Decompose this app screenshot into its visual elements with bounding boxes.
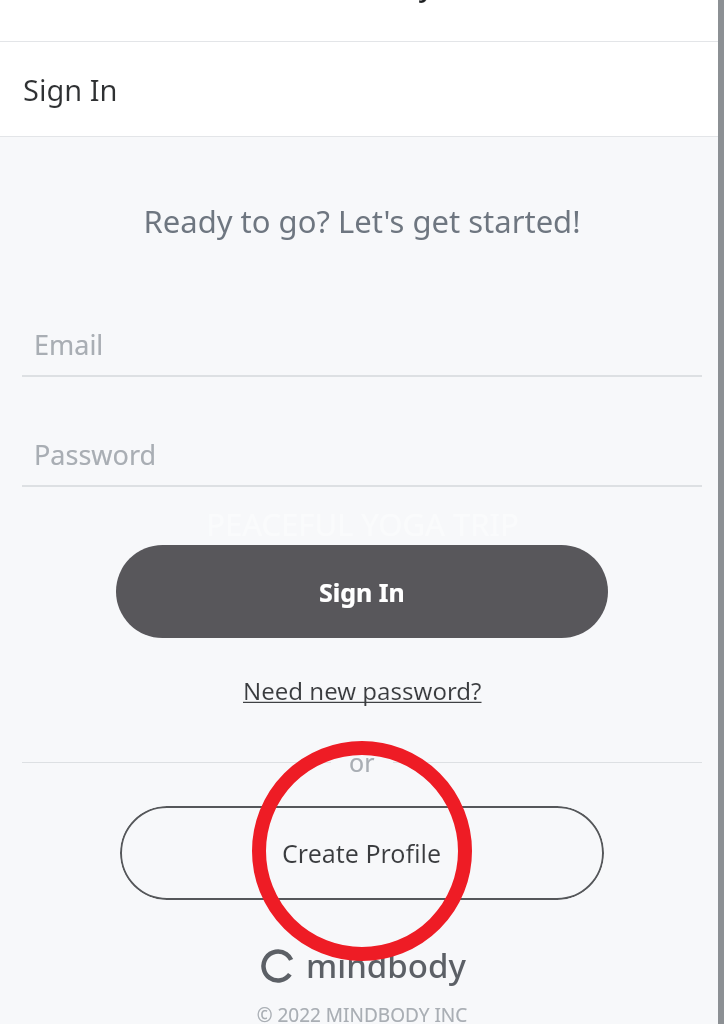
- staticText: Password: [34, 436, 157, 473]
- staticText: © 2022 MINDBODY INC: [0, 1002, 724, 1024]
- button[interactable]: Sign In: [116, 545, 608, 638]
- staticText: Ready to go? Let's get started!: [0, 200, 724, 242]
- staticText: mindbody: [289, 0, 435, 5]
- button[interactable]: Create Profile: [120, 806, 604, 900]
- staticText: or: [349, 745, 375, 779]
- staticText: Email: [34, 326, 104, 363]
- staticText: Create Profile: [282, 836, 442, 870]
- button[interactable]: Need new password?: [237, 670, 488, 711]
- staticText: Sign In: [319, 575, 405, 609]
- staticText: Need new password?: [243, 674, 482, 707]
- staticText: mindbody: [306, 943, 466, 988]
- staticText: Sign In: [23, 70, 118, 109]
